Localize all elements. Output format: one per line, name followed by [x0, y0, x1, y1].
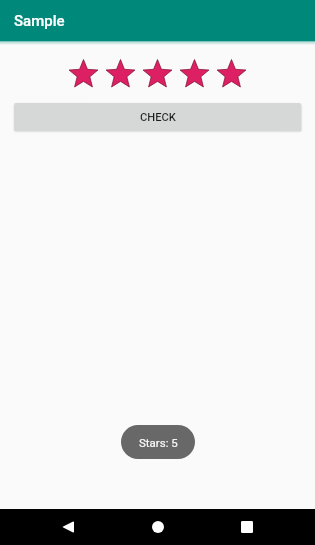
button[interactable]: Rate 4 star: [176, 57, 213, 90]
button[interactable]: Recent apps: [229, 509, 265, 545]
staticText: Sample: [14, 12, 65, 30]
staticText: Stars: 5: [139, 436, 178, 449]
button[interactable]: Back: [50, 509, 86, 545]
button[interactable]: Home: [140, 509, 176, 545]
button[interactable]: Rate 5 star: [213, 57, 250, 90]
button[interactable]: CHECK: [14, 103, 301, 131]
staticText: CHECK: [140, 111, 176, 124]
button[interactable]: Rate 3 star: [139, 57, 176, 90]
button[interactable]: Rate 2 star: [102, 57, 139, 90]
button[interactable]: Rate 1 star: [65, 57, 102, 90]
